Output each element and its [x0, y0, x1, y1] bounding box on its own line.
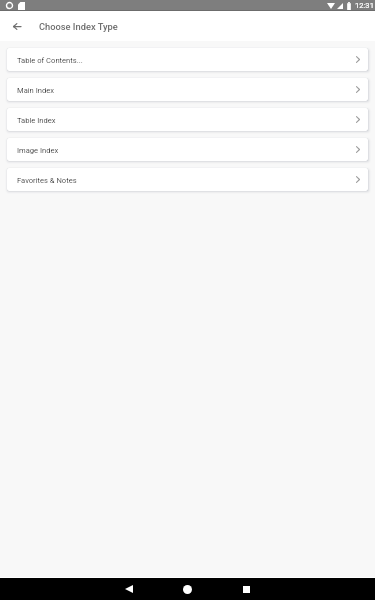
button[interactable]: Main Index	[7, 78, 368, 101]
staticText: Main Index	[17, 86, 55, 95]
button[interactable]: Favorites & Notes	[7, 168, 368, 191]
staticText: Choose Index Type	[39, 21, 118, 32]
staticText: Favorites & Notes	[17, 176, 77, 185]
button[interactable]: Recent apps	[217, 578, 276, 600]
button[interactable]: Table Index	[7, 108, 368, 131]
button[interactable]: Home	[158, 578, 217, 600]
button[interactable]: Image Index	[7, 138, 368, 161]
staticText: Table of Contents...	[17, 56, 83, 65]
button[interactable]: Back	[0, 11, 34, 41]
button[interactable]: Back	[99, 578, 158, 600]
staticText: Table Index	[17, 116, 56, 125]
staticText: 12:31	[355, 1, 374, 10]
staticText: Image Index	[17, 146, 59, 155]
button[interactable]: Table of Contents...	[7, 48, 368, 71]
